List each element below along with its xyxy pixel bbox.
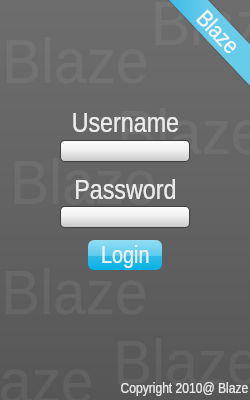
staticText: Blaze [113,327,250,397]
staticText: Blaze [191,5,245,59]
button[interactable]: Blaze [170,0,250,80]
staticText: Username [72,108,179,138]
staticText: Login [101,242,150,268]
staticText: Blaze [1,257,148,327]
button[interactable] [61,207,189,227]
staticText: Blaze [10,147,157,217]
staticText: Password [74,175,177,205]
staticText: Blaze [151,0,250,58]
staticText: Copyright 2010@ Blaze [121,380,249,396]
staticText: Blaze [0,346,94,400]
staticText: Blaze [2,26,149,96]
staticText: Blaze [117,97,250,167]
button[interactable]: Login [88,240,162,270]
button[interactable] [61,141,189,161]
